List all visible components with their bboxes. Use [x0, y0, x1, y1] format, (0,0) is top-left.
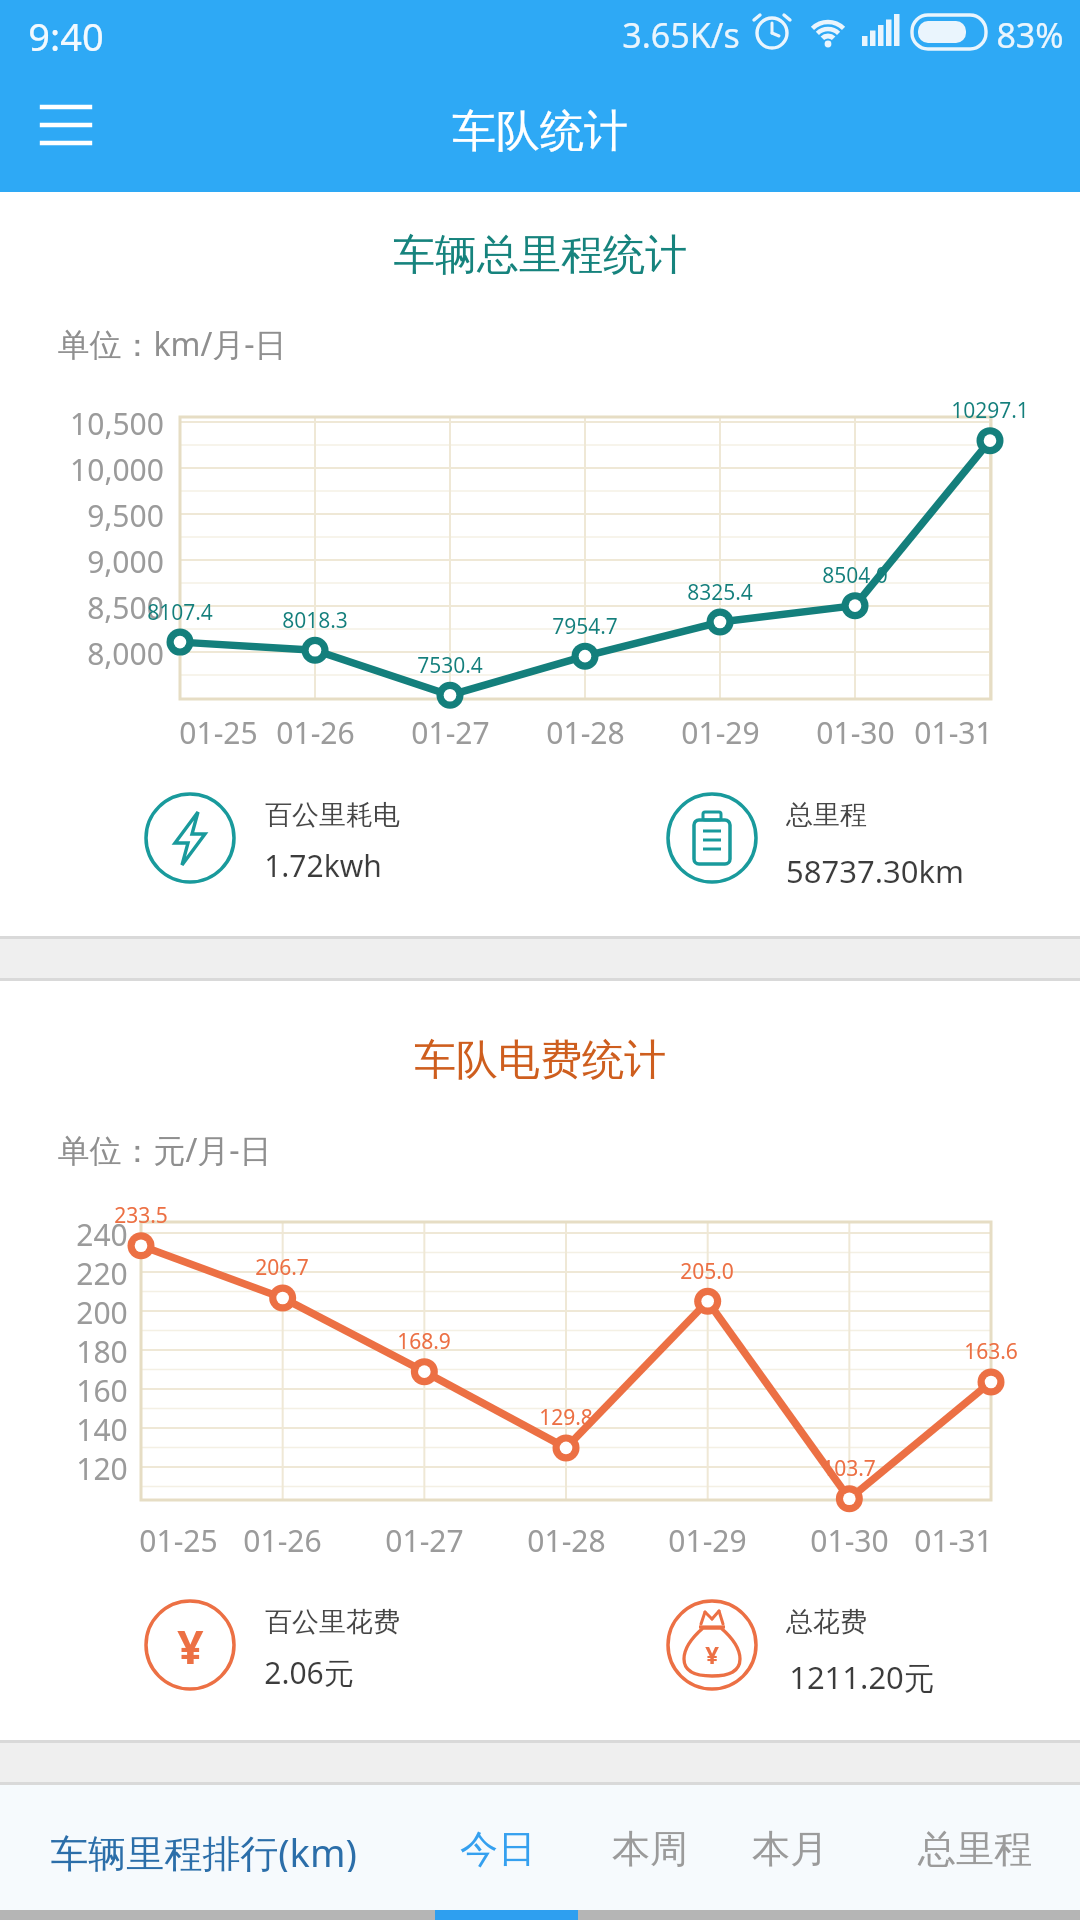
staticText: 10,500: [70, 403, 164, 441]
staticText: 8325.4: [687, 578, 753, 606]
staticText: 205.0: [680, 1257, 734, 1285]
staticText: 58737.30km: [786, 850, 964, 888]
staticText: 01-25: [139, 1520, 218, 1558]
staticText: 200: [76, 1292, 128, 1330]
staticText: 10297.1: [951, 396, 1029, 424]
staticText: 1.72kwh: [264, 845, 382, 881]
staticText: ¥: [177, 1615, 204, 1675]
staticText: 01-25: [179, 712, 258, 750]
staticText: 83%: [996, 12, 1064, 54]
staticText: 单位：元/月-日: [57, 1128, 272, 1166]
staticText: 163.6: [964, 1337, 1018, 1365]
staticText: 车辆里程排行(km): [50, 1826, 357, 1872]
staticText: 240: [76, 1214, 128, 1252]
staticText: 01-29: [681, 712, 760, 750]
staticText: 168.9: [397, 1327, 451, 1355]
staticText: 单位：km/月-日: [57, 322, 287, 360]
staticText: ¥: [705, 1638, 719, 1668]
staticText: 车队电费统计: [414, 1034, 666, 1082]
staticText: 01-26: [243, 1520, 322, 1558]
staticText: 01-26: [276, 712, 355, 750]
staticText: 3.65K/s: [622, 12, 740, 54]
staticText: 103.7: [822, 1454, 876, 1482]
staticText: 140: [76, 1409, 128, 1447]
staticText: 01-31: [914, 712, 993, 750]
staticText: 本周: [612, 1825, 688, 1873]
staticText: 本月: [752, 1825, 828, 1873]
button[interactable]: 本周: [580, 1806, 720, 1892]
button[interactable]: 总里程: [880, 1806, 1070, 1892]
staticText: 220: [76, 1253, 128, 1291]
staticText: 8504.0: [822, 561, 888, 589]
button[interactable]: 今日: [428, 1806, 568, 1892]
staticText: 总里程: [786, 798, 867, 828]
staticText: 百公里耗电: [265, 798, 400, 828]
staticText: 01-27: [385, 1520, 464, 1558]
staticText: 01-27: [411, 712, 490, 750]
staticText: 120: [76, 1448, 128, 1486]
staticText: 8018.3: [282, 606, 348, 634]
staticText: 7954.7: [552, 612, 618, 640]
staticText: 01-28: [527, 1520, 606, 1558]
button[interactable]: 本月: [720, 1806, 860, 1892]
staticText: 1211.20元: [789, 1656, 935, 1694]
staticText: 9:40: [28, 10, 104, 56]
staticText: 车队统计: [452, 104, 628, 154]
button[interactable]: [30, 95, 106, 161]
staticText: 10,000: [70, 449, 164, 487]
staticText: 206.7: [255, 1253, 309, 1281]
staticText: 9,500: [87, 495, 164, 533]
staticText: 01-28: [546, 712, 625, 750]
staticText: 总花费: [786, 1605, 867, 1635]
staticText: 01-30: [810, 1520, 889, 1558]
staticText: 233.5: [114, 1201, 168, 1229]
staticText: 160: [76, 1370, 128, 1408]
staticText: 总里程: [918, 1825, 1032, 1873]
staticText: 01-29: [668, 1520, 747, 1558]
staticText: 今日: [460, 1825, 536, 1873]
staticText: 7530.4: [417, 651, 483, 679]
staticText: 2.06元: [264, 1652, 354, 1688]
staticText: 01-30: [816, 712, 895, 750]
staticText: 9,000: [87, 541, 164, 579]
staticText: 百公里花费: [265, 1605, 400, 1635]
staticText: 8107.4: [147, 598, 213, 626]
staticText: 129.8: [539, 1403, 593, 1431]
staticText: 180: [76, 1331, 128, 1369]
staticText: 8,500: [87, 587, 164, 625]
staticText: 8,000: [87, 633, 164, 671]
staticText: 车辆总里程统计: [393, 229, 687, 277]
staticText: 01-31: [914, 1520, 993, 1558]
